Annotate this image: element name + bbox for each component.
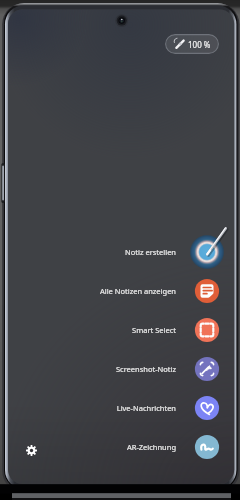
button[interactable]: Live-Nachrichten [55,393,222,423]
staticText: Alle Notizen anzeigen [55,286,176,296]
button[interactable]: Screenshot-Notiz [55,354,222,384]
staticText: Live-Nachrichten [55,403,176,413]
button[interactable]: 100 % [165,34,219,54]
staticText: Notiz erstellen [55,247,176,257]
staticText: AR-Zeichnung [55,442,176,452]
button[interactable]: AR-Zeichnung [55,432,222,462]
button[interactable]: Settings [20,439,42,461]
staticText: Screenshot-Notiz [55,364,176,374]
button[interactable]: Notiz erstellen [55,237,222,267]
staticText: Smart Select [55,325,176,335]
button[interactable]: Smart Select [55,315,222,345]
button[interactable]: Alle Notizen anzeigen [55,276,222,306]
staticText: 100 % [188,39,211,50]
